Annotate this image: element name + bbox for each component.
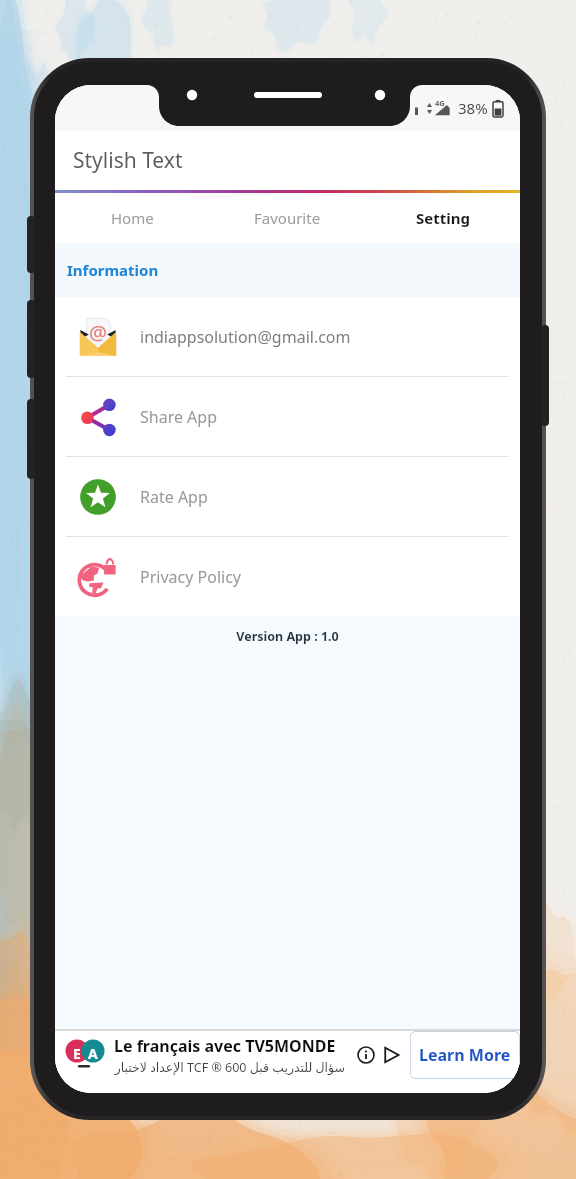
button[interactable]: Favourite: [210, 193, 365, 243]
staticText: Home: [111, 208, 154, 228]
staticText: @: [89, 319, 107, 346]
button[interactable]: Ad choices: [382, 1046, 400, 1064]
staticText: Version App : 1.0: [55, 628, 520, 645]
button[interactable]: Rate App: [55, 457, 520, 536]
staticText: 4G: [435, 98, 445, 108]
button[interactable]: Share App: [55, 377, 520, 456]
staticText: Information: [67, 260, 159, 280]
button[interactable]: Ad information: [357, 1046, 375, 1064]
button[interactable]: Setting: [365, 193, 520, 243]
staticText: Setting: [416, 208, 470, 228]
staticText: Le français avec TV5MONDE: [114, 1035, 336, 1057]
staticText: الإعداد لاختبار TCF ® 600 سؤال للتدريب ق…: [108, 1059, 345, 1076]
button[interactable]: @: [55, 297, 520, 376]
staticText: indiappsolution@gmail.com: [140, 326, 351, 348]
staticText: Rate App: [140, 486, 208, 508]
button[interactable]: Learn More: [410, 1031, 520, 1079]
staticText: Stylish Text: [73, 146, 183, 175]
staticText: E: [73, 1044, 81, 1063]
staticText: Share App: [140, 406, 218, 428]
staticText: Favourite: [254, 208, 321, 228]
staticText: A: [88, 1044, 98, 1063]
button[interactable]: Home: [55, 193, 210, 243]
button[interactable]: Privacy Policy: [55, 537, 520, 616]
staticText: Privacy Policy: [140, 566, 241, 588]
staticText: Learn More: [419, 1044, 511, 1066]
staticText: 38%: [458, 98, 488, 118]
